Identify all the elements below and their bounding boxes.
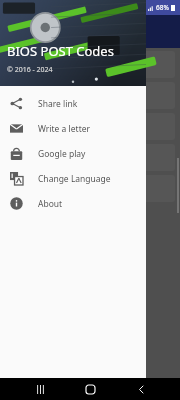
staticText: Share link — [38, 98, 78, 110]
other: Write a letter — [10, 122, 23, 135]
staticText: BIOS POST Codes — [7, 42, 114, 60]
button[interactable] — [5, 82, 175, 109]
button[interactable]: Home — [79, 378, 101, 400]
button[interactable]: Home — [79, 378, 101, 400]
button[interactable]: Change Language — [0, 166, 146, 191]
other: Change Language — [10, 172, 23, 185]
staticText: BIOS — [8, 184, 25, 194]
button[interactable] — [5, 51, 175, 78]
staticText: Write a letter — [38, 123, 91, 135]
other: Share link — [10, 97, 23, 110]
other: About — [10, 197, 23, 210]
button[interactable] — [5, 113, 175, 140]
button[interactable]: About — [0, 191, 146, 216]
button[interactable]: BIOS — [5, 175, 175, 202]
staticText: © 2016 - 2024 — [7, 65, 53, 75]
button[interactable]: Google play — [0, 141, 146, 166]
staticText: 68% — [156, 3, 169, 12]
staticText: Change Language — [38, 173, 111, 185]
button[interactable]: Recent apps — [29, 378, 51, 400]
staticText: About — [38, 198, 63, 210]
other: Google play — [10, 147, 23, 160]
button[interactable]: Share link — [0, 91, 146, 116]
staticText: Google play — [38, 148, 86, 160]
button[interactable]: Write a letter — [0, 116, 146, 141]
button[interactable]: Recent apps — [29, 378, 51, 400]
button[interactable] — [5, 144, 175, 171]
button[interactable]: Back — [130, 378, 152, 400]
button[interactable]: Back — [130, 378, 152, 400]
